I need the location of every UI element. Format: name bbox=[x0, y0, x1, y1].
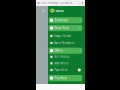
button[interactable]: Offers bbox=[49, 48, 82, 54]
staticText: TELE.AD bbox=[54, 9, 64, 12]
staticText: > bbox=[79, 26, 81, 30]
button[interactable]: Saved Numbers bbox=[49, 41, 82, 45]
staticText: Data Pack bbox=[55, 26, 69, 30]
button[interactable]: Paperless bbox=[49, 68, 82, 72]
staticText: Usage Detail bbox=[54, 34, 71, 38]
staticText: Bill History bbox=[54, 55, 69, 58]
staticText: nice-recharge.portal.io bbox=[41, 1, 73, 5]
staticText: Paperless bbox=[54, 68, 67, 72]
button[interactable]: Data Pack bbox=[49, 25, 82, 31]
button[interactable]: Bill History bbox=[49, 55, 82, 59]
button[interactable]: Statements bbox=[49, 61, 82, 65]
staticText: Offers bbox=[55, 49, 63, 52]
button[interactable]: Usage Detail bbox=[49, 34, 82, 38]
staticText: Saved Numbers bbox=[54, 41, 74, 45]
button[interactable]: Pay Now bbox=[49, 75, 82, 81]
staticText: Recharge bbox=[55, 18, 69, 22]
staticText: Pay Now bbox=[55, 76, 67, 80]
staticText: Statements bbox=[54, 61, 68, 65]
button[interactable]: Recharge bbox=[49, 17, 82, 23]
